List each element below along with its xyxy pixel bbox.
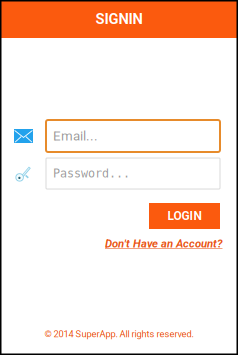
staticText: Password... [53,167,130,180]
staticText: Don't Have an Account? [105,237,222,250]
button[interactable]: Email... [46,120,220,152]
button[interactable]: Password... [46,158,220,189]
button[interactable]: LOGIN [149,203,220,229]
button[interactable]: Don't Have an Account? [105,237,222,250]
staticText: © 2014 SuperApp. All rights reserved. [44,328,193,339]
staticText: SIGNIN [95,10,142,28]
staticText: LOGIN [167,209,201,223]
staticText: Email... [53,128,98,144]
